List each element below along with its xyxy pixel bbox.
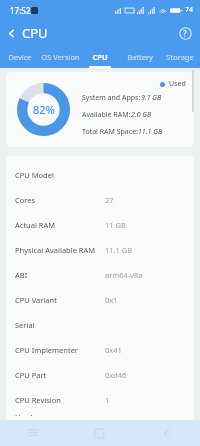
staticText: Available RAM: <box>82 110 131 120</box>
staticText: 11.1 GB <box>138 127 163 137</box>
staticText: Actual RAM <box>15 220 56 230</box>
button[interactable]: CPU Model <box>6 162 194 187</box>
staticText: 11.1 GB <box>105 245 133 255</box>
button[interactable]: Physical Available RAM <box>6 237 194 262</box>
button[interactable]: Back <box>0 22 22 44</box>
staticText: CPU <box>92 52 108 62</box>
button[interactable]: Help <box>175 23 195 43</box>
staticText: Serial <box>15 320 35 330</box>
staticText: 0x1 <box>105 295 118 305</box>
staticText: CPU Revision <box>15 395 61 405</box>
button[interactable]: Used <box>6 72 194 147</box>
staticText: 9.1 GB <box>141 93 162 103</box>
staticText: 1 <box>105 395 110 405</box>
button[interactable]: Serial <box>6 312 194 337</box>
staticText: Storage <box>166 52 194 62</box>
staticText: 27 <box>105 195 114 205</box>
staticText: CPU <box>22 24 48 42</box>
staticText: Battery <box>127 52 153 62</box>
staticText: Device <box>8 52 32 62</box>
staticText: arm64-v8a <box>105 270 143 280</box>
staticText: 17:52 <box>10 5 31 16</box>
staticText: Hardware <box>15 412 50 416</box>
button[interactable]: Battery <box>120 46 160 68</box>
staticText: Total RAM Space: <box>82 127 138 137</box>
staticText: 11 GB <box>105 220 126 230</box>
staticText: CPU Implementer <box>15 345 78 355</box>
button[interactable]: CPU Part <box>6 362 194 387</box>
staticText: System and Apps: <box>82 93 141 103</box>
button[interactable]: CPU Variant <box>6 287 194 312</box>
staticText: 0xd46 <box>105 370 127 380</box>
button[interactable]: OS Version <box>40 46 80 68</box>
button[interactable]: CPU Implementer <box>6 337 194 362</box>
button[interactable]: CPU <box>80 46 120 68</box>
staticText: Cores <box>15 195 36 205</box>
button[interactable]: Cores <box>6 187 194 212</box>
staticText: CPU Model <box>15 170 54 180</box>
staticText: 0x41 <box>105 345 122 355</box>
staticText: ABI <box>15 270 28 280</box>
staticText: OS Version <box>41 52 80 62</box>
button[interactable]: Hardware <box>6 412 194 416</box>
staticText: CPU Part <box>15 370 47 380</box>
staticText: 82% <box>33 102 55 117</box>
staticText: Physical Available RAM <box>15 245 96 255</box>
button[interactable]: Actual RAM <box>6 212 194 237</box>
staticText: CPU Variant <box>15 295 57 305</box>
button[interactable]: Device <box>0 46 40 68</box>
staticText: 2.0 GB <box>131 110 152 120</box>
button[interactable]: CPU Revision <box>6 387 194 412</box>
button[interactable]: Storage <box>160 46 200 68</box>
staticText: 74 <box>185 5 194 15</box>
button[interactable]: ABI <box>6 262 194 287</box>
staticText: ? <box>183 28 187 39</box>
staticText: Used <box>169 79 186 89</box>
